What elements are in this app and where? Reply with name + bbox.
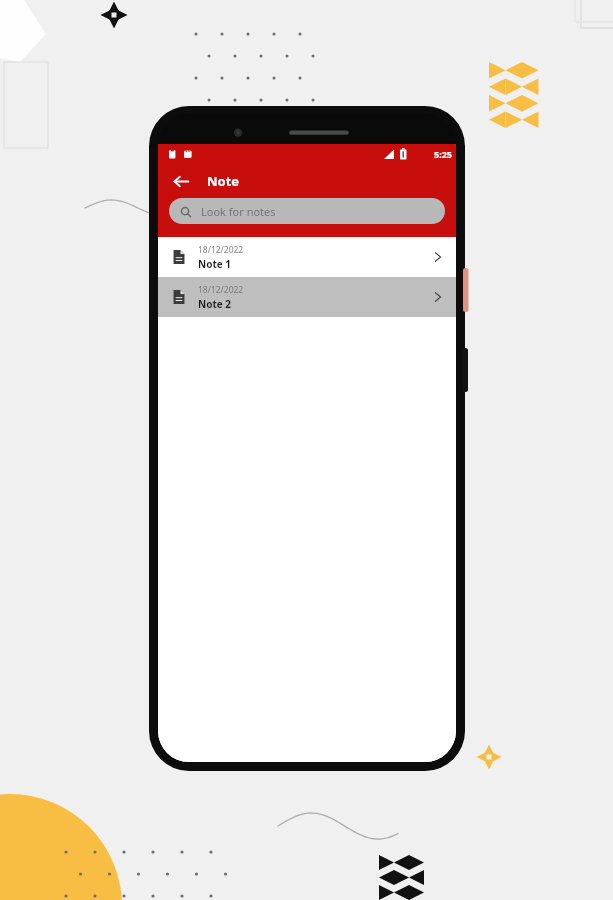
staticText: Note 1 bbox=[198, 257, 232, 271]
staticText: 18/12/2022 bbox=[198, 244, 244, 256]
button[interactable]: 18/12/2022 bbox=[158, 277, 456, 317]
button[interactable]: 18/12/2022 bbox=[158, 237, 456, 277]
staticText: Note bbox=[207, 172, 240, 190]
staticText: 18/12/2022 bbox=[198, 284, 244, 296]
button[interactable]: Back bbox=[170, 170, 192, 192]
staticText: Note 2 bbox=[198, 297, 232, 311]
staticText: 5:25 bbox=[434, 148, 452, 160]
staticText: Look for notes bbox=[201, 204, 276, 219]
button[interactable]: Look for notes bbox=[169, 198, 445, 224]
